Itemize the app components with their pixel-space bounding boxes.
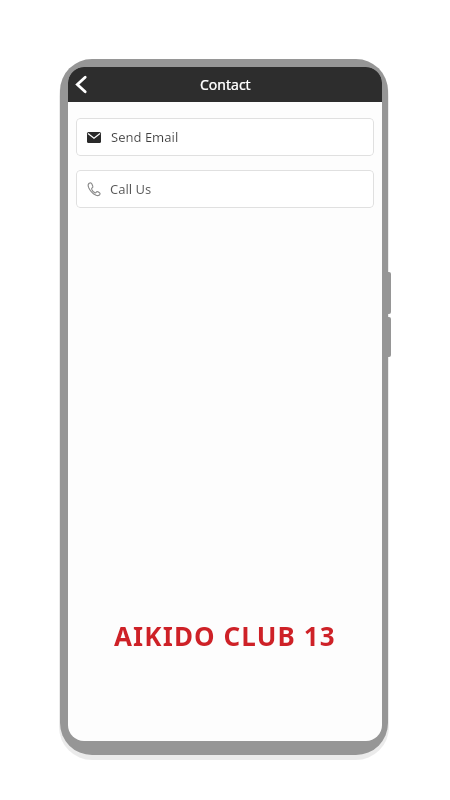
- button[interactable]: [68, 67, 98, 102]
- staticText: AIKIDO CLUB 13: [114, 618, 336, 653]
- button[interactable]: Send Email: [76, 118, 374, 156]
- staticText: Call Us: [110, 180, 152, 198]
- staticText: Send Email: [111, 128, 179, 146]
- staticText: Contact: [200, 75, 251, 94]
- button[interactable]: Call Us: [76, 170, 374, 208]
